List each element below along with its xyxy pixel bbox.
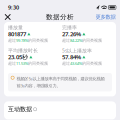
staticText: 的同类视频 <box>28 38 48 43</box>
staticText: 更多数据 <box>95 14 115 20</box>
staticText: 99.78% <box>16 38 28 43</box>
staticText: 43.64% <box>70 61 82 66</box>
button[interactable]: 关闭 <box>3 13 12 21</box>
staticText: 视频的5s以上播放率高于同类视频，建议优化视频前3s内容，增强吸引力。 <box>16 76 104 89</box>
staticText: 平均播放时长 <box>8 47 38 54</box>
staticText: 的同类视频 <box>28 61 48 66</box>
button[interactable]: 更多数据 <box>94 13 116 21</box>
staticText: 超过 <box>62 38 70 43</box>
staticText: 数据分析 <box>46 13 74 21</box>
staticText: 57.84% <box>62 53 81 61</box>
staticText: 的同类视频 <box>82 38 102 43</box>
staticText: 9:30 <box>8 4 19 11</box>
staticText: 84.22% <box>70 38 82 43</box>
staticText: 的同类视频 <box>82 61 102 66</box>
staticText: 完播率 <box>62 24 77 31</box>
staticText: 播放量 <box>8 24 23 31</box>
staticText: 互动数据 <box>8 105 32 113</box>
staticText: 超过 <box>8 38 16 43</box>
staticText: 超过 <box>62 61 70 66</box>
staticText: 超过 <box>8 61 16 66</box>
staticText: 23.05秒 <box>8 53 28 61</box>
staticText: 801877 <box>8 30 26 38</box>
staticText: 5s以上播放率 <box>62 47 92 54</box>
staticText: 27.26% <box>62 30 81 38</box>
staticText: 11.53% <box>16 61 28 66</box>
